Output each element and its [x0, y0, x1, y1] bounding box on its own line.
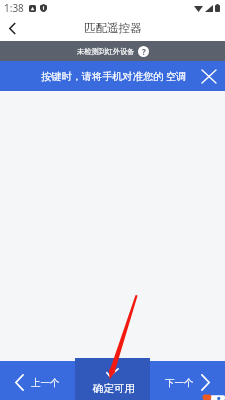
- staticText: 上一个: [31, 377, 60, 389]
- staticText: 按键时，请将手机对准您的 空调: [41, 69, 187, 83]
- staticText: ?: [142, 46, 146, 57]
- button[interactable]: Close: [199, 66, 219, 86]
- button[interactable]: 上一个: [0, 361, 75, 400]
- staticText: 确定可用: [93, 382, 135, 395]
- staticText: 匹配遥控器: [84, 21, 142, 35]
- button[interactable]: Back: [0, 16, 25, 41]
- staticText: 未检测到红外设备: [77, 47, 135, 56]
- button[interactable]: 下一个: [150, 361, 225, 400]
- button[interactable]: 确定可用: [75, 358, 150, 400]
- button[interactable]: Help: [138, 46, 149, 57]
- staticText: 下一个: [165, 377, 194, 389]
- staticText: 1:38: [4, 1, 24, 15]
